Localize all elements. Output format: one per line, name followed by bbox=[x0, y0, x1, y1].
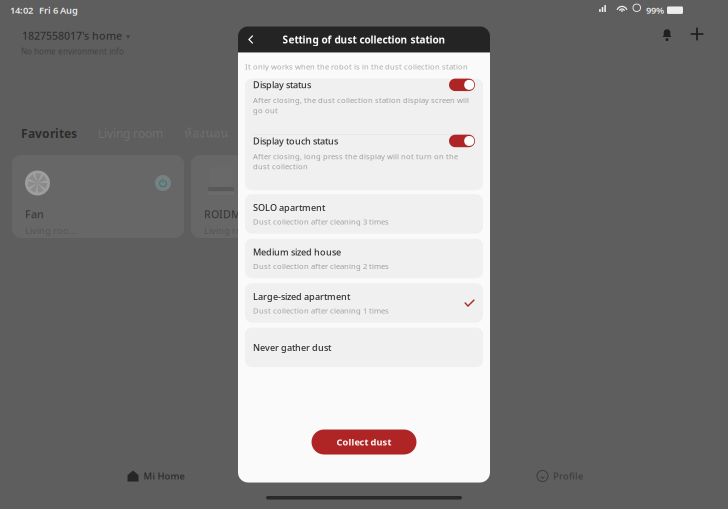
button[interactable]: ห้องนอน bbox=[184, 124, 228, 143]
staticText: Setting of dust collection station bbox=[282, 33, 445, 46]
button[interactable]: Living room bbox=[98, 125, 163, 141]
button[interactable]: Display touch status bbox=[245, 135, 483, 190]
button[interactable]: Favorites bbox=[21, 125, 77, 141]
button[interactable]: ROIDMI E bbox=[191, 155, 363, 238]
staticText: Fan bbox=[25, 207, 44, 221]
button[interactable]: Medium sized house bbox=[245, 239, 483, 278]
staticText: Collect dust bbox=[336, 436, 391, 448]
button[interactable]: Collect dust bbox=[311, 429, 416, 454]
staticText: Living room bbox=[98, 125, 163, 141]
staticText: 14:02 Fri 6 Aug bbox=[10, 4, 78, 16]
staticText: Never gather dust bbox=[253, 341, 331, 353]
staticText: SOLO apartment bbox=[253, 201, 325, 213]
staticText: Dust collection after cleaning 3 times bbox=[253, 216, 389, 226]
staticText: Dust collection after cleaning 1 times bbox=[253, 305, 389, 315]
staticText: After closing, long press the display wi… bbox=[253, 151, 458, 171]
button[interactable]: Add device bbox=[687, 24, 707, 44]
staticText: Dust collection after cleaning 2 times bbox=[253, 261, 389, 271]
staticText: Living roo. bbox=[204, 224, 251, 237]
staticText: 99% bbox=[646, 4, 664, 16]
staticText: Display touch status bbox=[253, 135, 338, 147]
staticText: It only works when the robot is in the d… bbox=[245, 61, 468, 72]
staticText: Large-sized apartment bbox=[253, 290, 350, 302]
button[interactable]: SOLO apartment bbox=[245, 194, 483, 234]
button[interactable]: Notifications bbox=[657, 24, 677, 44]
staticText: Living roo... bbox=[25, 224, 78, 237]
button[interactable]: Profile bbox=[364, 464, 728, 488]
staticText: ▾ bbox=[126, 32, 130, 41]
staticText: ROIDMI E bbox=[204, 207, 254, 221]
staticText: Mi Home bbox=[143, 470, 184, 482]
staticText: No home environment info bbox=[21, 46, 124, 57]
staticText: ห้องนอน bbox=[184, 124, 228, 143]
staticText: Display status bbox=[253, 79, 311, 91]
staticText: Favorites bbox=[21, 125, 77, 141]
staticText: Profile bbox=[553, 470, 583, 482]
button[interactable]: Display status bbox=[245, 79, 483, 134]
staticText: After closing, the dust collection stati… bbox=[253, 95, 469, 115]
staticText: Medium sized house bbox=[253, 246, 341, 258]
button[interactable]: Back bbox=[238, 26, 264, 52]
button[interactable]: 1827558017's home bbox=[22, 28, 130, 43]
button[interactable]: Fan bbox=[12, 155, 184, 238]
button[interactable]: Large-sized apartment bbox=[245, 283, 483, 323]
button[interactable]: Never gather dust bbox=[245, 328, 483, 367]
staticText: 1827558017's home bbox=[22, 28, 122, 43]
button[interactable]: Mi Home bbox=[0, 464, 364, 488]
